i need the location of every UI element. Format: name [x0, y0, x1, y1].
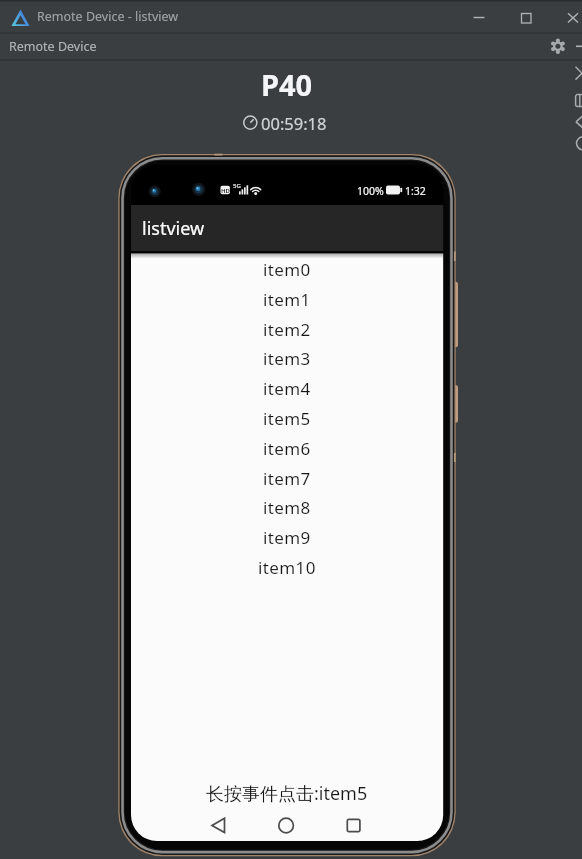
staticText: item0: [263, 258, 311, 281]
button[interactable]: [513, 4, 539, 30]
staticText: Remote Device: [9, 38, 97, 55]
staticText: item1: [263, 288, 311, 311]
staticText: item9: [263, 526, 311, 549]
staticText: item3: [263, 347, 311, 370]
button[interactable]: item0: [131, 254, 443, 284]
button[interactable]: item4: [131, 373, 443, 403]
button[interactable]: item9: [131, 522, 443, 552]
staticText: 100%: [357, 184, 384, 197]
staticText: Remote Device - listview: [37, 8, 179, 25]
button[interactable]: [560, 4, 582, 26]
button[interactable]: item3: [131, 343, 443, 373]
staticText: 5G: [233, 182, 241, 190]
button[interactable]: [272, 811, 300, 839]
staticText: item8: [263, 496, 311, 519]
button[interactable]: item10: [131, 552, 443, 582]
button[interactable]: item5: [131, 403, 443, 433]
staticText: item6: [263, 437, 311, 460]
staticText: listview: [142, 216, 205, 241]
button[interactable]: item2: [131, 314, 443, 344]
button[interactable]: item6: [131, 433, 443, 463]
staticText: item10: [258, 556, 316, 579]
staticText: 长按事件点击:item5: [206, 781, 368, 806]
button[interactable]: [204, 811, 232, 839]
button[interactable]: [548, 37, 567, 56]
staticText: item5: [263, 407, 311, 430]
staticText: P40: [261, 65, 313, 101]
staticText: item7: [263, 467, 311, 490]
button[interactable]: [339, 811, 367, 839]
button[interactable]: [466, 4, 492, 30]
staticText: item2: [263, 318, 311, 341]
staticText: HD: [221, 187, 230, 195]
button[interactable]: Remote Device: [9, 33, 97, 60]
staticText: 00:59:18: [261, 112, 327, 133]
button[interactable]: item7: [131, 463, 443, 493]
staticText: item4: [263, 377, 311, 400]
button[interactable]: item1: [131, 284, 443, 314]
button[interactable]: item8: [131, 492, 443, 522]
staticText: 1:32: [405, 184, 426, 197]
